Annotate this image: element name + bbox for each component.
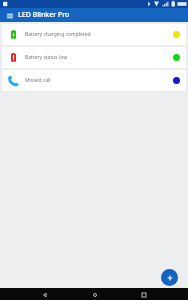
button[interactable]: Home — [89, 289, 100, 300]
button[interactable]: Battery charging completed — [2, 24, 186, 45]
staticText: Missed call — [25, 77, 173, 84]
button[interactable]: Recent apps — [138, 289, 149, 300]
staticText: LED Blinker Pro — [18, 10, 70, 20]
staticText: Battery status low — [25, 54, 173, 61]
button[interactable]: Open navigation menu — [5, 11, 14, 20]
button[interactable]: Battery status low — [2, 47, 186, 68]
button[interactable]: Missed call — [2, 70, 186, 91]
button[interactable]: Back — [39, 289, 50, 300]
staticText: Battery charging completed — [25, 31, 173, 38]
button[interactable]: Add notification — [161, 269, 178, 286]
